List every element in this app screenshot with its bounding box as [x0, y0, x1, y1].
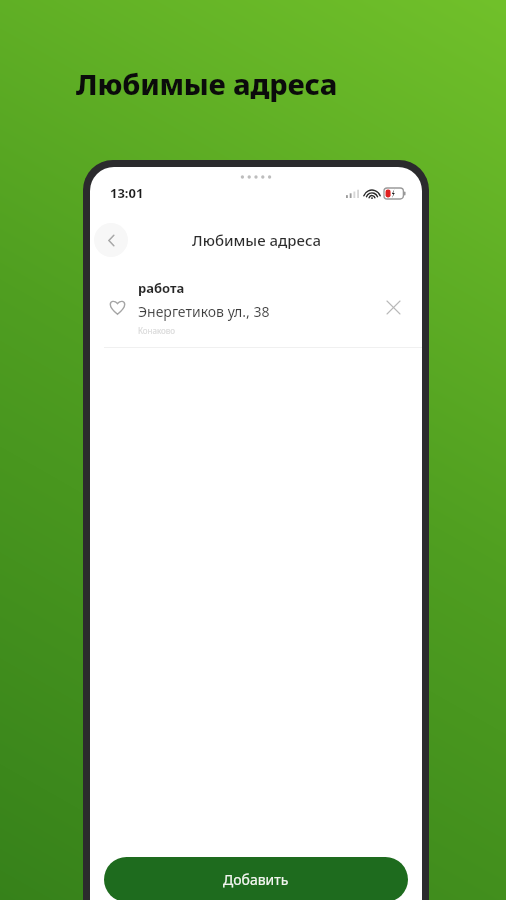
staticText: Конаково [138, 325, 176, 336]
staticText: Любимые адреса [76, 64, 338, 103]
button[interactable]: Добавить [104, 857, 408, 900]
staticText: Любимые адреса [192, 230, 321, 250]
staticText: 13:01 [110, 184, 144, 202]
staticText: Добавить [223, 870, 289, 889]
button[interactable]: Remove address [378, 292, 408, 322]
button[interactable]: Back [94, 223, 128, 257]
staticText: работа [138, 279, 185, 297]
button[interactable]: Favorite [90, 267, 422, 347]
staticText: Энергетиков ул., 38 [138, 302, 270, 321]
button[interactable]: Favorite [104, 294, 130, 320]
